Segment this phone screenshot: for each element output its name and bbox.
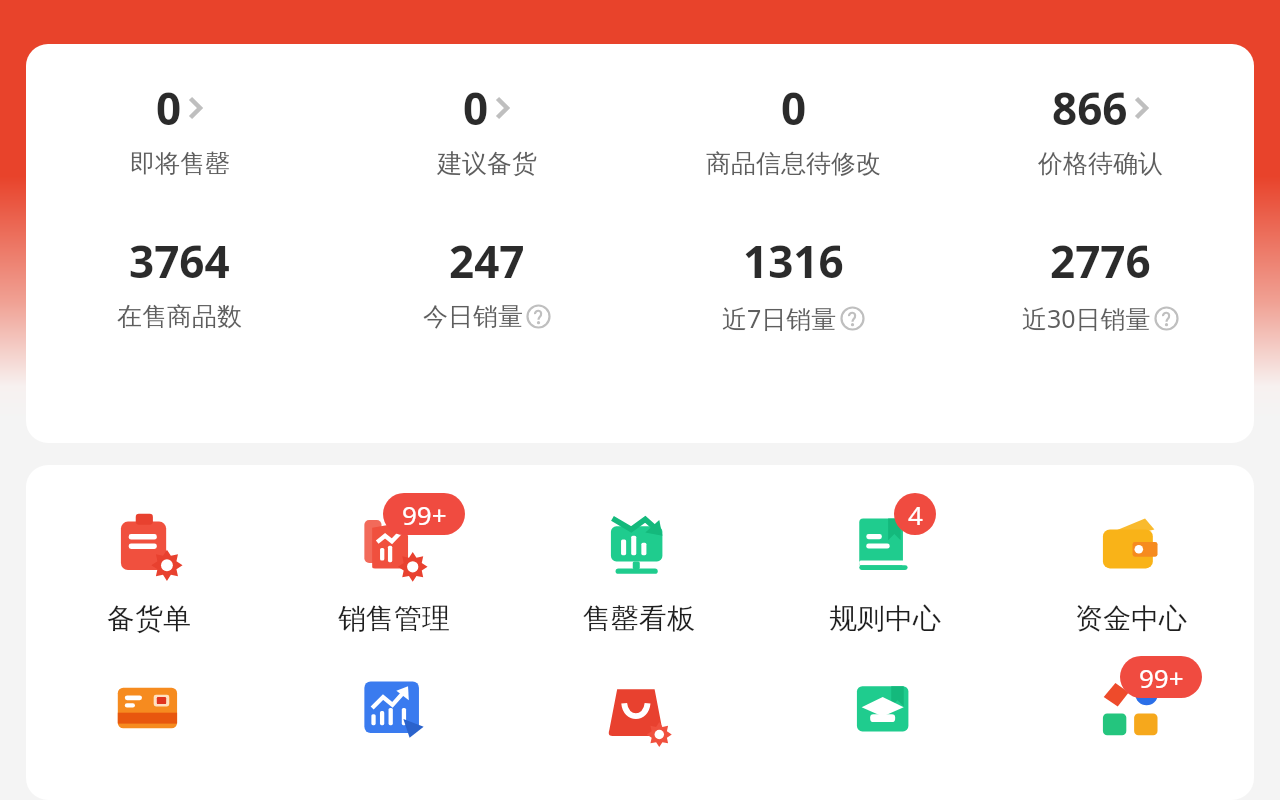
staticText: 99+ [402,497,447,532]
button[interactable]: 247 [333,231,640,332]
staticText: 备货单 [107,601,191,636]
button[interactable]: Menu item [26,658,271,758]
staticText: 价格待确认 [1038,148,1163,179]
staticText: 规则中心 [829,601,941,636]
button[interactable]: 1316 [640,231,947,335]
button[interactable]: 资金中心 [1008,495,1254,636]
button[interactable]: 0 [640,78,947,179]
button[interactable]: Menu item [271,658,516,758]
button[interactable]: Menu item [762,658,1008,758]
staticText: 商品信息待修改 [706,148,881,179]
staticText: 1316 [743,231,844,291]
button[interactable]: 售罄看板 [516,495,762,636]
staticText: 售罄看板 [583,601,695,636]
staticText: 即将售罄 [130,148,230,179]
staticText: 建议备货 [437,148,537,179]
staticText: 2776 [1050,231,1151,291]
staticText: 4 [908,497,923,532]
staticText: 0 [781,78,807,138]
staticText: 在售商品数 [117,301,242,332]
button[interactable]: Menu item [1008,658,1254,758]
staticText: 0 [156,78,182,138]
staticText: 247 [449,231,525,291]
button[interactable]: 3764 [26,231,333,332]
staticText: 销售管理 [338,601,450,636]
staticText: 99+ [1139,660,1184,695]
button[interactable]: 备货单 [26,495,271,636]
button[interactable]: Menu item [516,658,762,758]
button[interactable]: 销售管理 [271,495,516,636]
button[interactable]: 规则中心 [762,495,1008,636]
button[interactable]: 866 [947,78,1254,179]
staticText: 近30日销量 [1022,301,1151,335]
staticText: 3764 [129,231,230,291]
staticText: 近7日销量 [722,301,837,335]
button[interactable]: 0 [26,78,333,179]
button[interactable]: 2776 [947,231,1254,335]
staticText: 资金中心 [1075,601,1187,636]
staticText: 866 [1052,78,1128,138]
button[interactable]: 0 [333,78,640,179]
staticText: 0 [463,78,489,138]
staticText: 今日销量 [423,301,523,332]
